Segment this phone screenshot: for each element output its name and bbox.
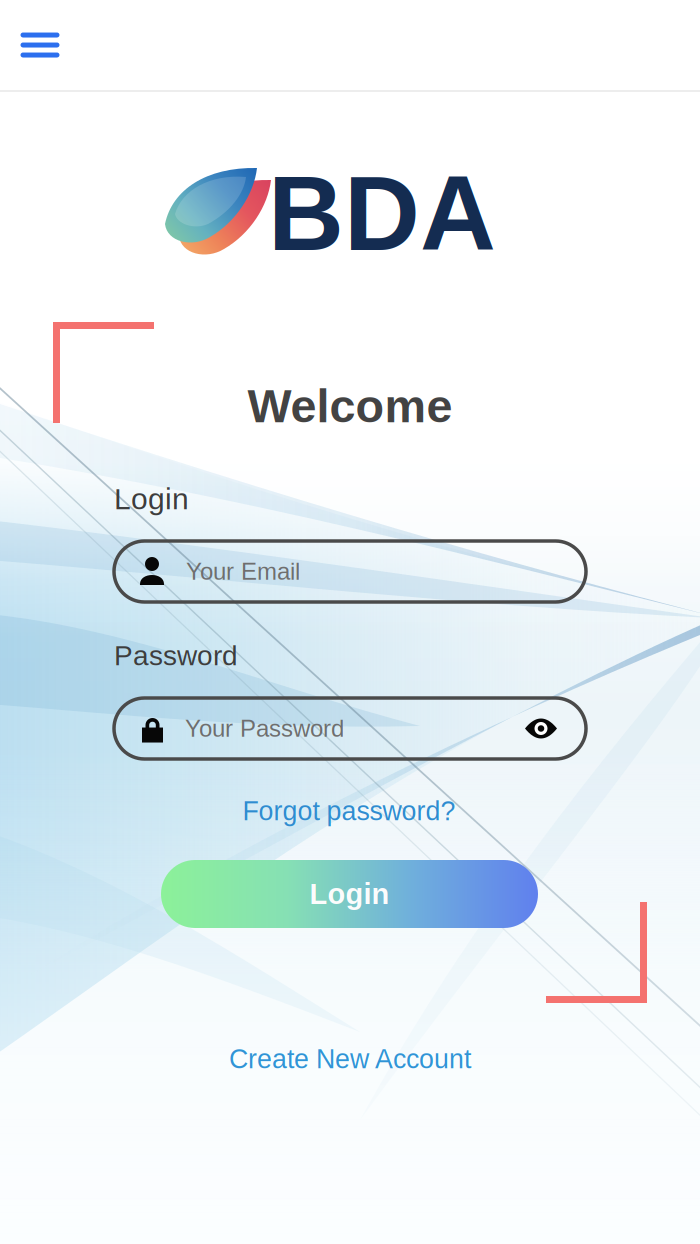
staticText: Welcome [247, 380, 452, 432]
button[interactable]: Forgot password? [219, 786, 479, 836]
button[interactable]: Menu [0, 0, 80, 90]
button[interactable]: Create New Account [190, 1034, 510, 1084]
staticText: Forgot password? [242, 796, 455, 826]
staticText: Your Password [185, 715, 344, 742]
staticText: Password [114, 640, 238, 671]
staticText: Create New Account [229, 1044, 471, 1074]
button[interactable]: Login [161, 860, 538, 928]
staticText: Login [114, 482, 189, 515]
staticText: BDA [268, 155, 496, 272]
staticText: Login [309, 878, 389, 910]
staticText: Your Email [186, 558, 300, 585]
